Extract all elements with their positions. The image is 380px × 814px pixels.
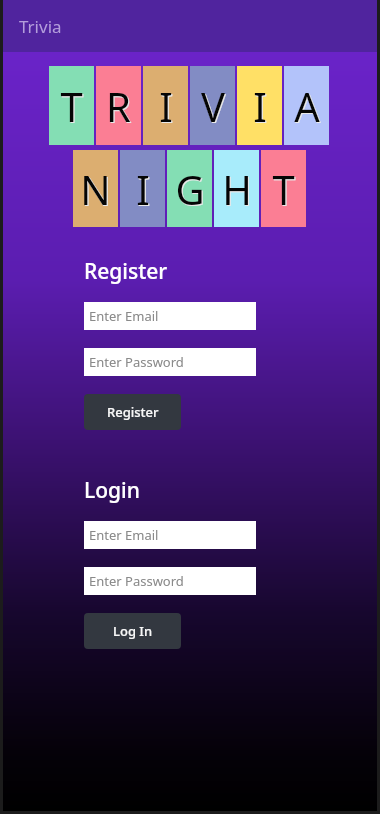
staticText: Register (107, 403, 159, 421)
staticText: Enter Password (89, 572, 184, 590)
button[interactable]: Enter Email (84, 521, 256, 549)
button[interactable]: Enter Password (84, 348, 256, 376)
staticText: R (106, 79, 131, 133)
staticText: I (136, 162, 150, 216)
staticText: I (160, 80, 174, 134)
staticText: I (137, 163, 151, 217)
staticText: H (222, 162, 252, 216)
staticText: N (80, 162, 111, 216)
staticText: T (272, 162, 295, 216)
button[interactable]: Enter Password (84, 567, 256, 595)
staticText: R (107, 80, 132, 134)
staticText: Log In (113, 622, 153, 640)
button[interactable]: Register (84, 394, 181, 430)
staticText: G (175, 162, 205, 216)
staticText: T (60, 79, 83, 133)
staticText: A (295, 80, 321, 134)
button[interactable]: Enter Email (84, 302, 256, 330)
staticText: V (202, 80, 226, 134)
staticText: N (81, 163, 112, 217)
staticText: Enter Password (89, 353, 184, 371)
staticText: I (254, 80, 268, 134)
staticText: G (176, 163, 206, 217)
staticText: Trivia (19, 15, 62, 38)
staticText: T (61, 80, 84, 134)
staticText: Login (84, 476, 140, 505)
staticText: Register (84, 257, 168, 286)
staticText: I (253, 79, 267, 133)
staticText: I (159, 79, 173, 133)
staticText: Enter Email (89, 307, 159, 325)
staticText: A (294, 79, 320, 133)
staticText: V (201, 79, 225, 133)
staticText: Enter Email (89, 526, 159, 544)
staticText: H (223, 163, 253, 217)
button[interactable]: Trivia (3, 0, 377, 52)
staticText: T (273, 163, 296, 217)
button[interactable]: Log In (84, 613, 181, 649)
